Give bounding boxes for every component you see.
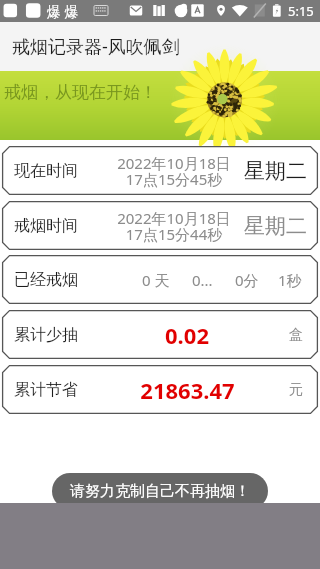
staticText: 0.02 (165, 320, 209, 350)
button[interactable]: 戒烟记录器-风吹佩剑 (0, 22, 320, 71)
staticText: 2022年10月18日 17点15分45秒 (117, 153, 231, 189)
staticText: 元 (289, 381, 303, 399)
button[interactable]: 已经戒烟 (2, 255, 318, 304)
staticText: 0分 (235, 270, 259, 290)
staticText: 累计少抽 (14, 325, 78, 345)
staticText: 星期二 (244, 213, 307, 239)
staticText: 21863.47 (140, 375, 235, 405)
staticText: 已经戒烟 (14, 270, 78, 290)
staticText: 2022年10月18日 17点15分44秒 (117, 208, 231, 244)
staticText: 戒烟时间 (14, 216, 78, 236)
staticText: 爆 爆 (47, 2, 79, 21)
staticText: 5:15 (288, 2, 314, 20)
button[interactable]: 累计节省 (2, 365, 318, 414)
button[interactable]: 戒烟时间 (2, 201, 318, 250)
button[interactable]: 现在时间 (2, 146, 318, 195)
staticText: 星期二 (244, 158, 307, 184)
staticText: 请努力克制自己不再抽烟！ (70, 482, 250, 501)
staticText: 戒烟，从现在开始！ (4, 82, 157, 103)
staticText: 盒 (289, 326, 303, 344)
staticText: 1秒 (278, 270, 302, 290)
staticText: 0 天 (142, 270, 170, 290)
button[interactable]: 累计少抽 (2, 310, 318, 359)
staticText: 现在时间 (14, 161, 78, 181)
staticText: 戒烟记录器-风吹佩剑 (12, 34, 180, 59)
staticText: 0... (192, 270, 213, 290)
staticText: 累计节省 (14, 380, 78, 400)
